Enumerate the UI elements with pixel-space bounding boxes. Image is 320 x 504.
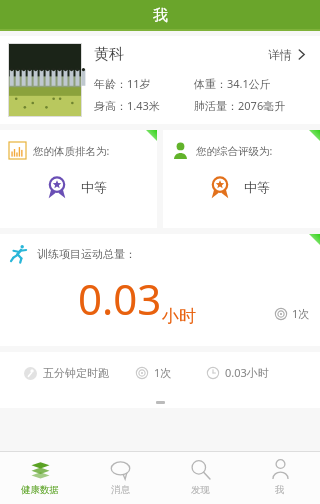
staticText: 身高：1.43米 [94,98,160,113]
staticText: 五分钟定时跑 [43,366,109,380]
button[interactable]: 五分钟定时跑 [0,352,320,408]
staticText: 0.03小时 [225,365,269,380]
staticText: 发现 [191,484,210,496]
staticText: 体重：34.1公斤 [194,76,271,91]
staticText: 年龄：11岁 [94,76,151,91]
other: 发现 [190,459,211,480]
staticText: 健康数据 [21,484,59,496]
staticText: 中等 [81,179,107,195]
staticText: 黄科 [94,45,124,64]
staticText: 1次 [292,306,310,321]
staticText: 消息 [111,484,130,496]
staticText: 详情 [268,47,292,62]
staticText: 您的综合评级为: [196,144,273,158]
button[interactable]: 详情 [264,43,310,66]
staticText: 1次 [154,365,172,380]
button[interactable]: 您的体质排名为: [0,130,157,228]
button[interactable]: 消息 [80,452,160,504]
button[interactable]: 您的综合评级为: [163,130,320,228]
staticText: 我 [275,484,285,496]
button[interactable]: 健康数据 [0,452,80,504]
staticText: 您的体质排名为: [33,144,110,158]
button[interactable]: 训练项目运动总量： [0,234,320,346]
staticText: 小时 [162,306,196,327]
button[interactable]: 我 [240,452,320,504]
staticText: 训练项目运动总量： [37,247,136,261]
staticText: 肺活量：2076毫升 [194,98,286,113]
button[interactable]: 黄科 [0,36,320,124]
other: 消息 [110,459,131,480]
staticText: 0.03 [78,270,162,327]
staticText: 我 [153,6,168,25]
staticText: 中等 [244,179,270,195]
button[interactable]: 发现 [160,452,240,504]
other: 我 [270,459,291,480]
